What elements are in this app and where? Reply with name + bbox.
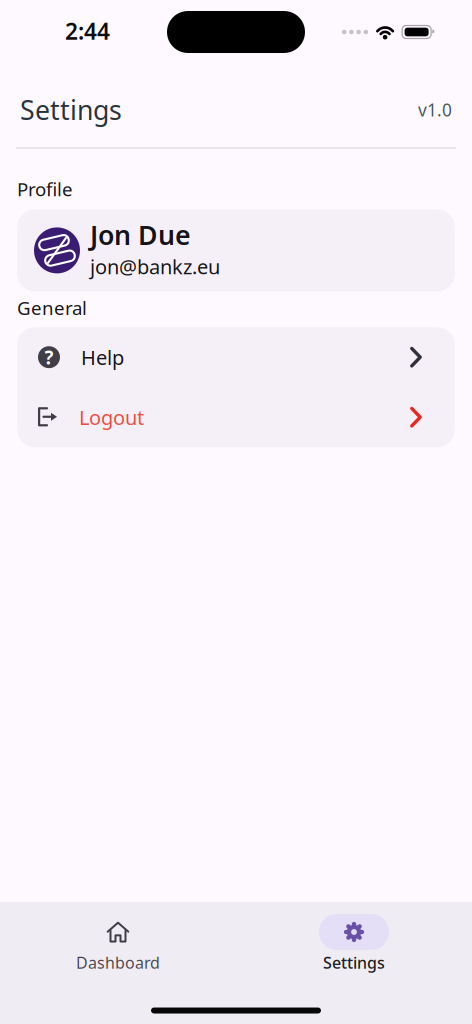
button[interactable]: Logout	[17, 387, 455, 447]
button[interactable]: Settings	[236, 914, 472, 973]
staticText: General	[17, 295, 87, 320]
staticText: jon@bankz.eu	[90, 253, 220, 280]
button[interactable]: ?	[17, 327, 455, 387]
button[interactable]: Dashboard	[0, 914, 236, 973]
staticText: v1.0	[418, 98, 452, 121]
staticText: 2:44	[65, 16, 110, 46]
staticText: Help	[81, 344, 124, 370]
staticText: Jon Due	[90, 217, 191, 252]
staticText: Settings	[323, 952, 385, 973]
staticText: Settings	[20, 92, 122, 127]
staticText: Logout	[79, 404, 144, 430]
staticText: Dashboard	[76, 952, 160, 973]
button[interactable]: Jon Due	[0, 209, 472, 291]
staticText: Profile	[17, 177, 73, 201]
staticText: ?	[44, 345, 53, 370]
